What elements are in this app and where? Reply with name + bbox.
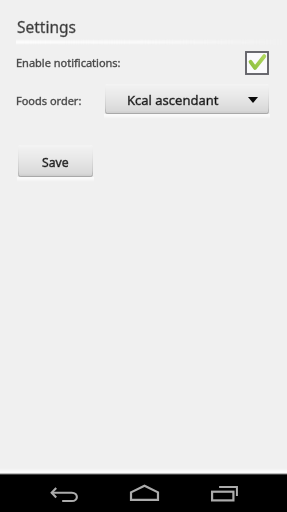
- staticText: Save: [42, 154, 69, 171]
- staticText: Kcal ascendant: [127, 91, 219, 109]
- staticText: Save: [42, 154, 69, 171]
- staticText: Enable notifications:: [16, 55, 121, 70]
- staticText: Settings: [17, 16, 76, 37]
- button[interactable]: Enable notifications: [246, 52, 268, 74]
- button[interactable]: Kcal ascendant: [105, 84, 269, 114]
- button[interactable]: Save: [18, 145, 93, 177]
- staticText: Foods order:: [16, 93, 82, 108]
- staticText: Settings: [17, 16, 76, 37]
- staticText: Kcal ascendant: [127, 91, 219, 109]
- button[interactable]: Recent apps: [192, 475, 257, 512]
- button[interactable]: Back: [31, 475, 96, 512]
- staticText: Foods order:: [16, 93, 82, 108]
- staticText: Enable notifications:: [16, 55, 121, 70]
- button[interactable]: Home: [112, 475, 177, 512]
